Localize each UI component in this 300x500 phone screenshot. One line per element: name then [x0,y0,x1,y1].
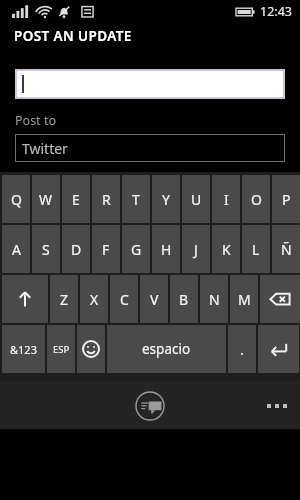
staticText: E [72,190,80,209]
staticText: U [191,190,202,209]
staticText: O [251,190,262,209]
staticText: POST AN UPDATE [14,27,132,45]
button[interactable] [17,71,283,97]
staticText: Post to [15,112,56,129]
button[interactable]: Q [2,175,30,223]
button[interactable]: V [140,275,168,323]
staticText: F [102,240,110,259]
button[interactable]: P [272,175,300,223]
button[interactable]: F [92,225,120,273]
button[interactable]: W [32,175,60,223]
staticText: Q [11,190,22,209]
button[interactable]: Post update [128,384,172,428]
button[interactable]: Shift [2,275,48,323]
staticText: T [132,190,140,209]
button[interactable]: H [152,225,180,273]
staticText: W [39,190,53,209]
staticText: espacio [142,340,191,358]
staticText: D [71,240,82,259]
staticText: H [161,240,172,259]
button[interactable]: Emoji [77,325,105,373]
button[interactable]: G [122,225,150,273]
button[interactable]: K [212,225,240,273]
button[interactable]: L [242,225,270,273]
button[interactable]: R [92,175,120,223]
staticText: . [240,340,244,359]
button[interactable]: X [80,275,108,323]
staticText: L [252,240,260,259]
staticText: B [179,290,189,309]
staticText: J [194,240,198,259]
button[interactable]: N [200,275,228,323]
button[interactable]: C [110,275,138,323]
staticText: 12:43 [260,3,292,20]
staticText: Twitter [22,139,68,158]
staticText: G [131,240,142,259]
button[interactable]: T [122,175,150,223]
button[interactable]: A [2,225,30,273]
staticText: Y [162,190,170,209]
button[interactable]: Backspace [260,275,300,323]
button[interactable]: U [182,175,210,223]
staticText: X [90,290,99,309]
button[interactable]: espacio [107,325,226,373]
button[interactable]: . [228,325,256,373]
button[interactable]: Z [50,275,78,323]
button[interactable]: O [242,175,270,223]
button[interactable]: M [230,275,258,323]
button[interactable]: ESP [47,325,75,373]
staticText: N [209,290,220,309]
staticText: A [12,240,21,259]
staticText: V [150,290,159,309]
button[interactable]: E [62,175,90,223]
staticText: K [222,240,231,259]
button[interactable]: D [62,225,90,273]
button[interactable]: B [170,275,198,323]
button[interactable]: Y [152,175,180,223]
staticText: I [224,190,229,209]
staticText: R [102,190,111,209]
button[interactable]: S [32,225,60,273]
staticText: ESP [53,343,70,356]
staticText: P [282,190,291,209]
staticText: &123 [10,342,37,357]
staticText: C [120,290,129,309]
staticText: Ñ [281,240,292,259]
button[interactable]: Ñ [272,225,300,273]
button[interactable]: More options [260,389,294,423]
button[interactable]: I [212,175,240,223]
button[interactable]: &123 [2,325,45,373]
button[interactable]: Enter [258,325,299,373]
staticText: Z [60,290,69,309]
button[interactable]: Twitter [15,134,285,162]
button[interactable]: J [182,225,210,273]
staticText: M [238,290,251,309]
staticText: S [42,240,50,259]
